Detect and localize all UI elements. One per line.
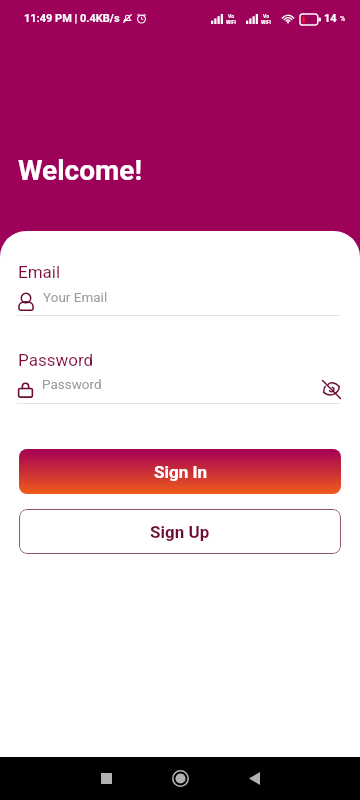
button[interactable]: Back bbox=[242, 766, 266, 790]
staticText: Welcome! bbox=[18, 154, 142, 187]
staticText: Password bbox=[42, 376, 102, 392]
button[interactable]: Recent apps bbox=[94, 766, 118, 790]
button[interactable]: Sign In bbox=[19, 449, 341, 494]
button[interactable]: Sign Up bbox=[19, 509, 341, 554]
staticText: Sign Up bbox=[150, 522, 210, 542]
staticText: Vo bbox=[263, 13, 269, 19]
staticText: 14 bbox=[324, 12, 337, 25]
staticText: Email bbox=[18, 262, 61, 282]
button[interactable]: Home bbox=[168, 766, 192, 790]
staticText: 11:49 PM | 0.4KB/s bbox=[24, 12, 120, 25]
staticText: Sign In bbox=[154, 462, 207, 482]
staticText: Vo bbox=[228, 13, 234, 19]
button[interactable]: Toggle password visibility bbox=[321, 379, 341, 399]
staticText: Password bbox=[18, 350, 94, 370]
staticText: WiFi bbox=[226, 19, 236, 25]
staticText: % bbox=[340, 15, 346, 23]
staticText: WiFi bbox=[261, 19, 271, 25]
staticText: Your Email bbox=[43, 289, 108, 305]
